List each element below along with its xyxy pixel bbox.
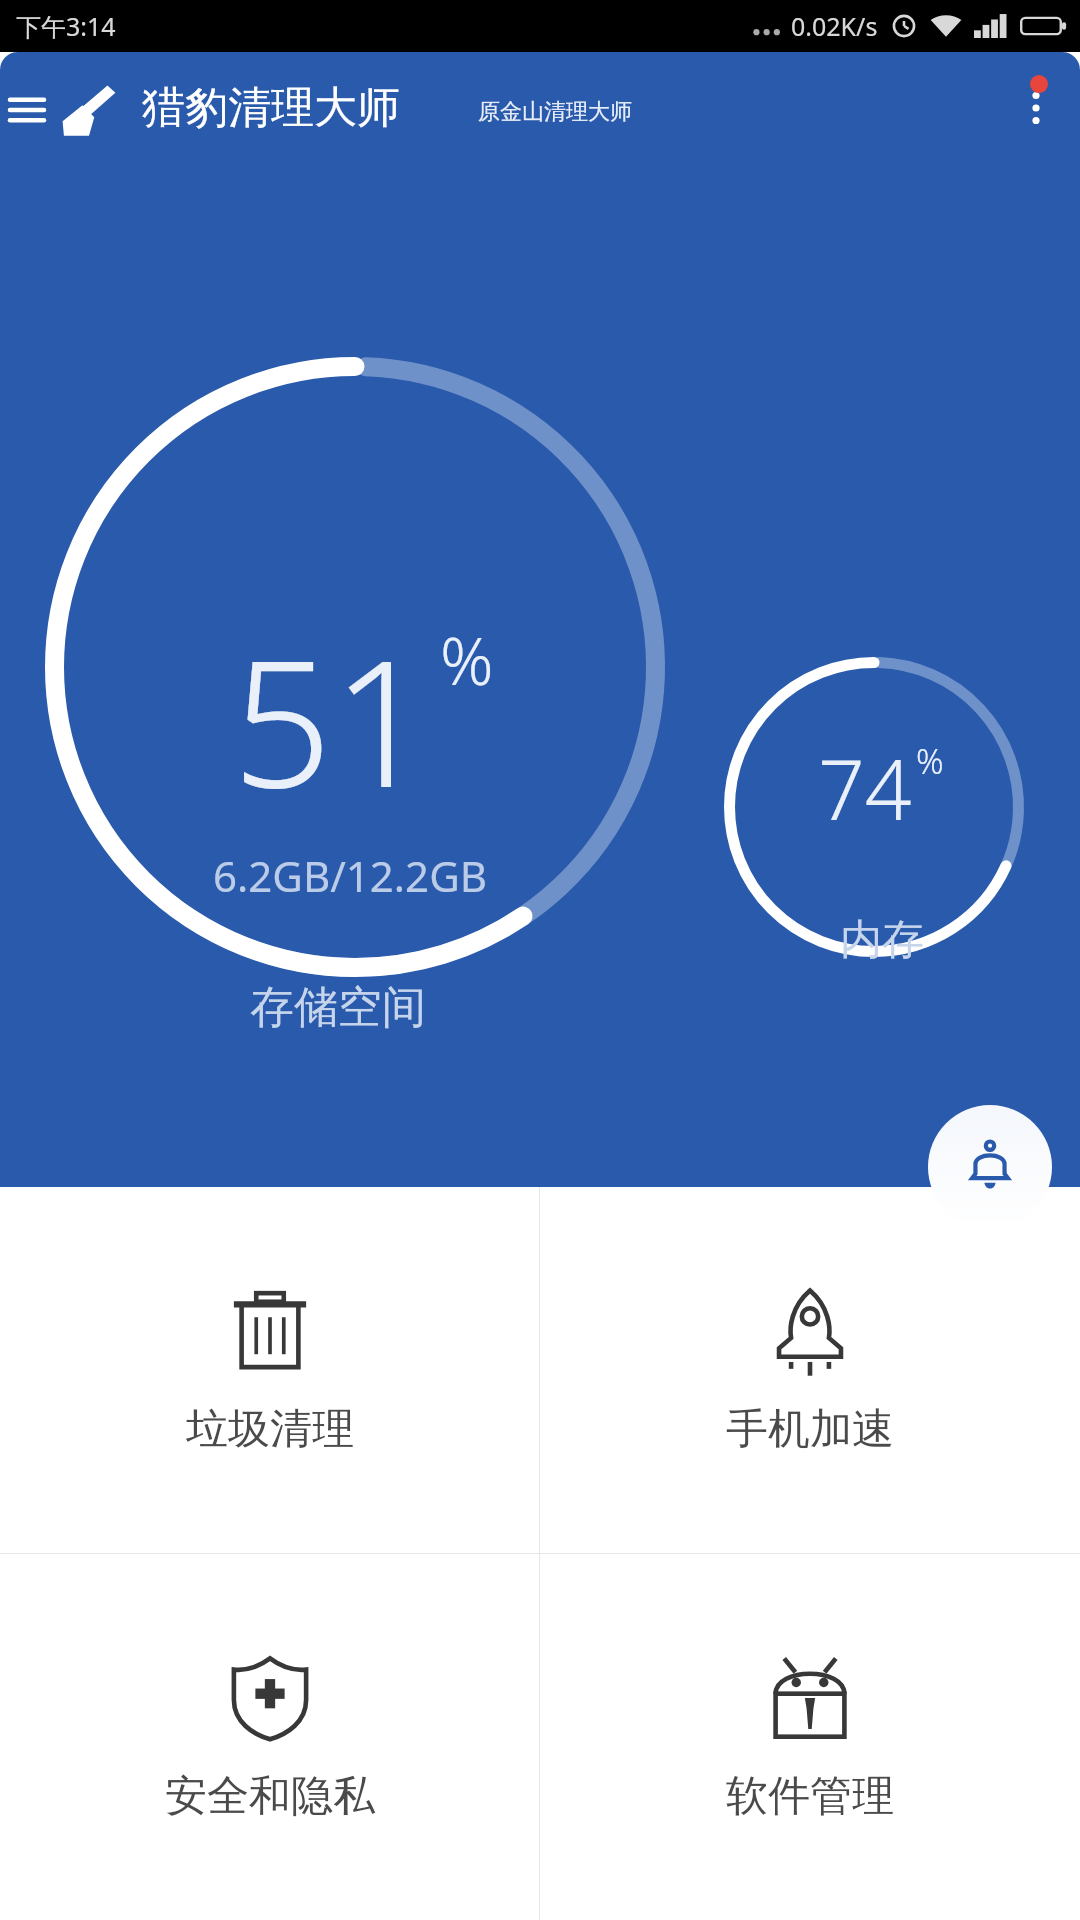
staticText: % bbox=[916, 738, 944, 784]
staticText: 6.2GB/12.2GB bbox=[213, 847, 488, 904]
button[interactable]: Menu bbox=[0, 77, 60, 143]
button[interactable]: 垃圾清理 bbox=[0, 1187, 539, 1553]
staticText: 内存 bbox=[840, 914, 924, 967]
staticText: 下午3:14 bbox=[16, 9, 116, 43]
staticText: 手机加速 bbox=[726, 1403, 894, 1456]
staticText: 垃圾清理 bbox=[186, 1403, 354, 1456]
button[interactable]: 手机加速 bbox=[540, 1187, 1080, 1553]
staticText: 存储空间 bbox=[250, 980, 426, 1035]
staticText: 猎豹清理大师 bbox=[142, 81, 400, 135]
button[interactable]: Notifications bbox=[928, 1105, 1052, 1229]
staticText: 软件管理 bbox=[726, 1770, 894, 1823]
staticText: 51 bbox=[232, 600, 432, 838]
staticText: 原金山清理大师 bbox=[478, 98, 632, 126]
button[interactable]: 安全和隐私 bbox=[0, 1554, 539, 1920]
button[interactable]: 软件管理 bbox=[540, 1554, 1080, 1920]
button[interactable]: More options bbox=[998, 70, 1074, 146]
staticText: 0.02K/s bbox=[791, 9, 878, 43]
staticText: 74 bbox=[818, 732, 912, 844]
staticText: % bbox=[440, 614, 494, 704]
staticText: 安全和隐私 bbox=[165, 1770, 375, 1823]
